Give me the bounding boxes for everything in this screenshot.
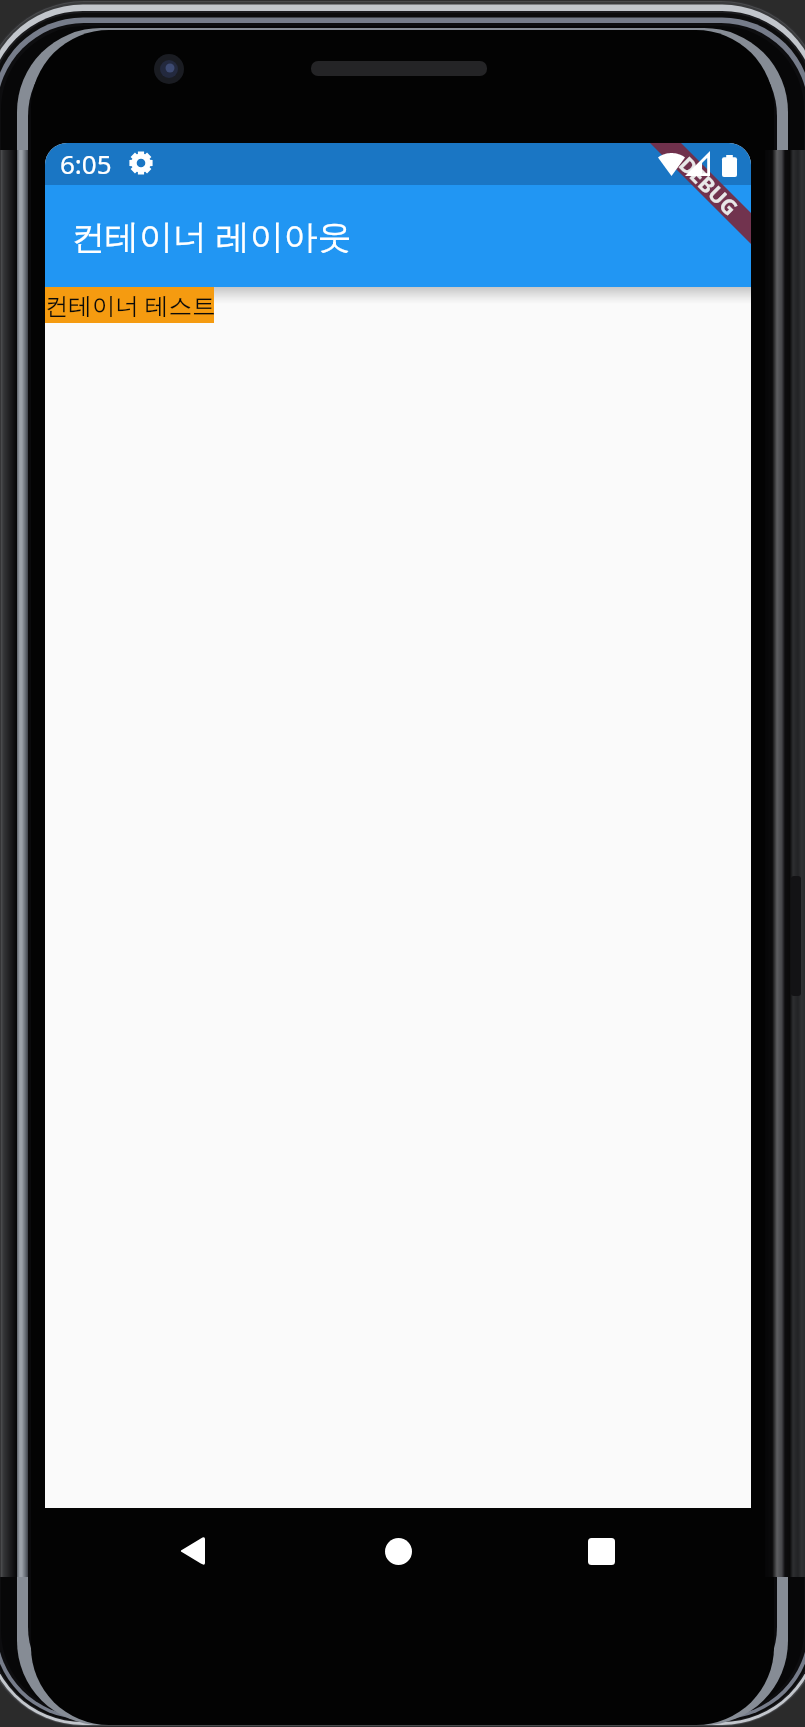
button[interactable]: Back xyxy=(151,1510,233,1592)
button[interactable]: 컨테이너 레이아웃 xyxy=(45,185,751,287)
staticText: 컨테이너 테스트 xyxy=(45,289,214,321)
staticText: 6:05 xyxy=(60,146,112,181)
button[interactable]: 컨테이너 테스트 xyxy=(45,287,214,323)
staticText: 컨테이너 레이아웃 xyxy=(71,213,352,259)
staticText: DEBUG xyxy=(672,150,744,222)
button[interactable]: Recent apps xyxy=(560,1510,642,1592)
button[interactable]: Home xyxy=(357,1510,439,1592)
